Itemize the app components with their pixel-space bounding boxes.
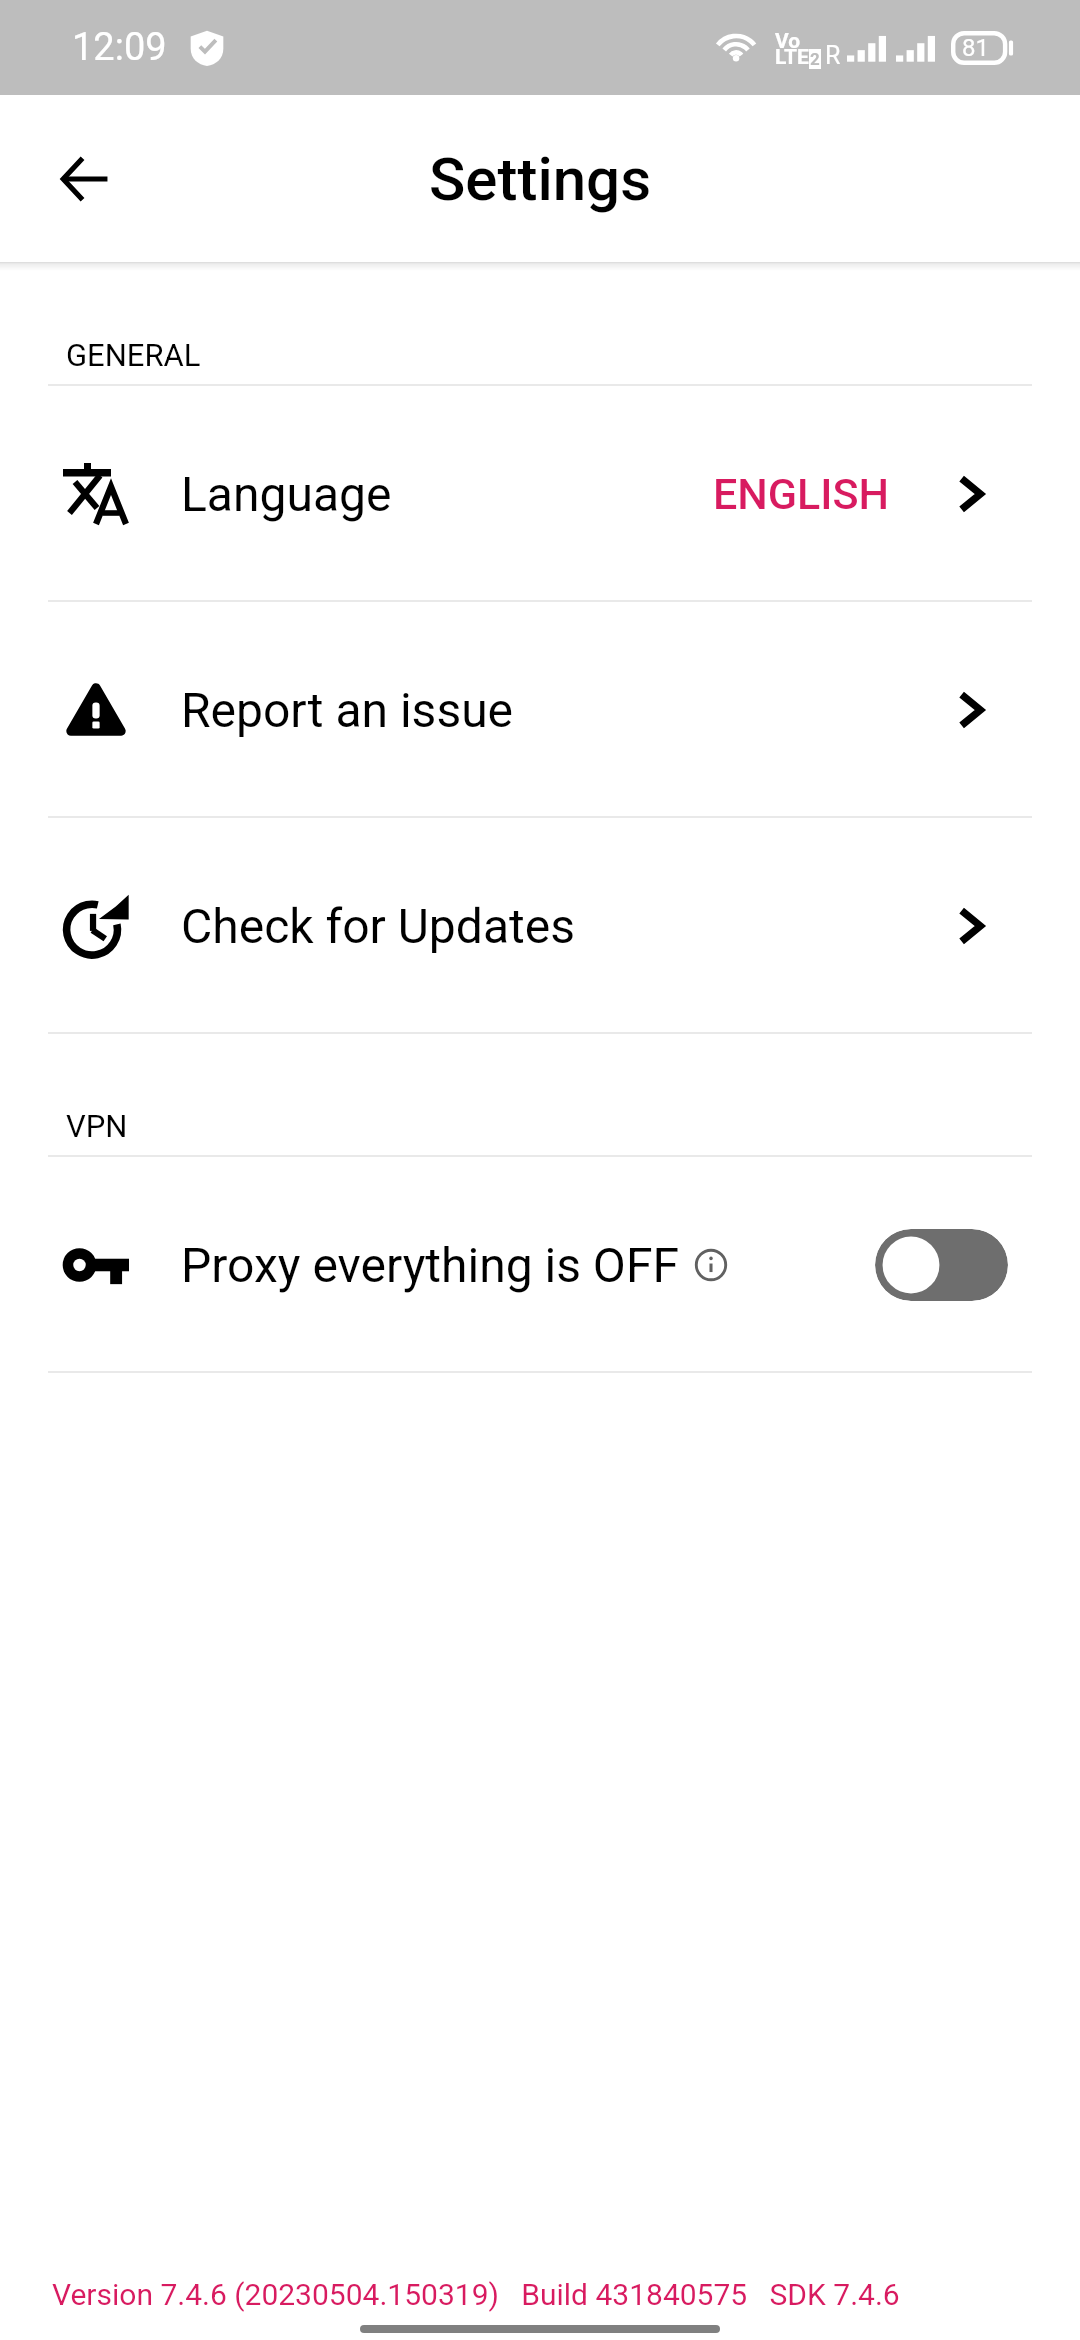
staticText: ENGLISH xyxy=(713,469,890,519)
button[interactable]: Proxy everything toggle, off xyxy=(875,1229,1008,1301)
button[interactable]: Report an issue xyxy=(0,602,1080,818)
button[interactable]: Language xyxy=(0,386,1080,602)
button[interactable]: Proxy everything is OFF xyxy=(0,1157,1080,1373)
button[interactable]: More information xyxy=(695,1249,727,1281)
staticText: 2 xyxy=(810,49,820,69)
staticText: GENERAL xyxy=(66,337,201,373)
staticText: VPN xyxy=(66,1108,128,1144)
staticText: 12:09 xyxy=(72,25,167,70)
staticText: Language xyxy=(181,466,392,522)
staticText: Proxy everything is OFF xyxy=(181,1237,679,1293)
staticText: R xyxy=(825,41,841,70)
button[interactable]: Check for Updates xyxy=(0,818,1080,1034)
staticText: Report an issue xyxy=(181,682,514,738)
staticText: Vo xyxy=(775,29,801,54)
staticText: LTE xyxy=(775,45,809,70)
staticText: 81 xyxy=(962,34,989,62)
button[interactable]: Back xyxy=(36,131,132,227)
staticText: Settings xyxy=(429,144,652,214)
staticText: Check for Updates xyxy=(181,898,575,954)
staticText: Version 7.4.6 (20230504.150319) Build 43… xyxy=(52,2277,900,2312)
